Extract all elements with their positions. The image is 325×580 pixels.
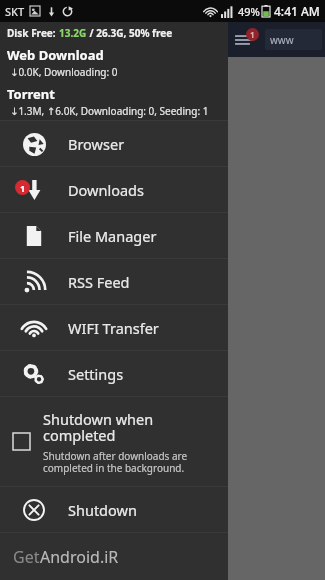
staticText: 1 [250, 29, 255, 40]
staticText: / 26.3G, 50% free [87, 26, 173, 40]
staticText: WIFI Transfer [68, 318, 159, 338]
staticText: Android.iR [40, 546, 119, 568]
button[interactable]: Shutdown [0, 487, 228, 532]
button[interactable]: Shutdown when completed [0, 397, 228, 486]
button[interactable]: www [265, 29, 322, 50]
staticText: 1 [20, 182, 26, 194]
staticText: Shutdown when completed [43, 409, 154, 446]
staticText: Downloads [68, 180, 144, 200]
button[interactable]: Open navigation drawer [230, 22, 260, 57]
button[interactable]: Settings [0, 351, 228, 396]
staticText: 13.2G [59, 26, 87, 40]
staticText: Disk Free: [7, 26, 59, 40]
staticText: RSS Feed [68, 272, 130, 292]
staticText: Shutdown after downloads are completed i… [43, 449, 188, 475]
button[interactable]: WIFI Transfer [0, 305, 228, 350]
staticText: Torrent [7, 85, 55, 103]
staticText: Browser [68, 134, 125, 154]
staticText: ↓0.0K, Downloading: 0 [10, 65, 118, 79]
staticText: ↓1.3M, ↑6.0K, Downloading: 0, Seeding: 1 [10, 104, 209, 118]
staticText: 4:41 AM [274, 3, 320, 19]
button[interactable]: RSS Feed [0, 259, 228, 304]
staticText: SKT [5, 4, 25, 19]
button[interactable]: 1 [0, 167, 228, 212]
staticText: Shutdown [68, 500, 137, 520]
staticText: www [270, 33, 294, 47]
button[interactable]: Browser [0, 121, 228, 166]
button[interactable]: File Manager [0, 213, 228, 258]
staticText: Settings [68, 364, 124, 384]
staticText: 49% [238, 4, 260, 19]
staticText: Web Download [7, 46, 104, 64]
staticText: File Manager [68, 226, 157, 246]
staticText: Get [13, 546, 40, 568]
